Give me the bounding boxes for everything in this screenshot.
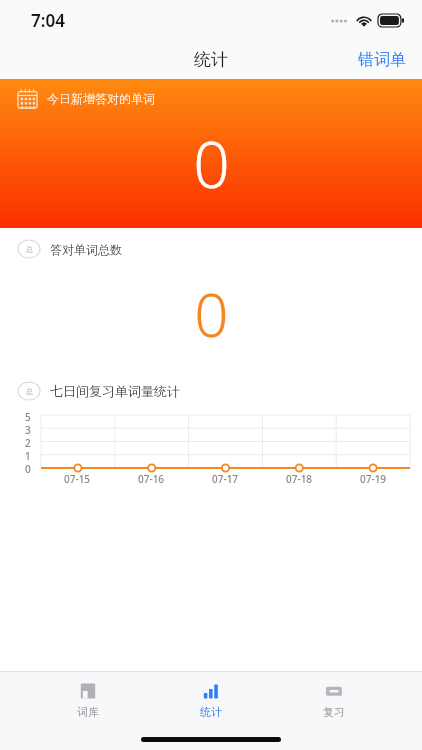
staticText: 统计 [200, 705, 222, 719]
button[interactable]: 5 [0, 410, 422, 505]
staticText: 错词单 [358, 50, 406, 70]
other: Summary [18, 382, 40, 400]
staticText: 1 [25, 449, 31, 462]
staticText: 07-18 [286, 472, 313, 486]
staticText: 7:04 [31, 9, 65, 32]
other: Word bank [79, 682, 97, 700]
staticText: 词库 [77, 705, 99, 719]
other: Statistics [202, 682, 220, 700]
other: Summary [18, 240, 40, 258]
staticText: 总 [26, 245, 33, 254]
staticText: 0 [25, 462, 31, 475]
staticText: 总 [26, 387, 33, 396]
staticText: 复习 [323, 705, 345, 719]
staticText: 07-19 [360, 472, 387, 486]
staticText: 2 [25, 436, 31, 449]
staticText: 0 [194, 273, 229, 355]
staticText: 07-17 [212, 472, 239, 486]
button[interactable]: Summary [0, 228, 422, 376]
button[interactable]: Calendar [0, 79, 422, 228]
button[interactable]: Review [299, 678, 369, 723]
staticText: 统计 [194, 49, 228, 70]
button[interactable]: Word bank [53, 678, 123, 723]
other: Calendar [18, 89, 37, 108]
staticText: 07-15 [64, 472, 91, 486]
staticText: 07-16 [138, 472, 165, 486]
staticText: 今日新增答对的单词 [47, 91, 155, 106]
button[interactable]: Statistics [176, 678, 246, 723]
staticText: 0 [193, 120, 230, 207]
staticText: 七日间复习单词量统计 [50, 383, 180, 399]
button[interactable]: 错词单 [342, 42, 422, 78]
staticText: 答对单词总数 [50, 242, 122, 257]
other: Review [325, 682, 343, 700]
staticText: 5 [25, 410, 31, 423]
staticText: 3 [25, 423, 31, 436]
